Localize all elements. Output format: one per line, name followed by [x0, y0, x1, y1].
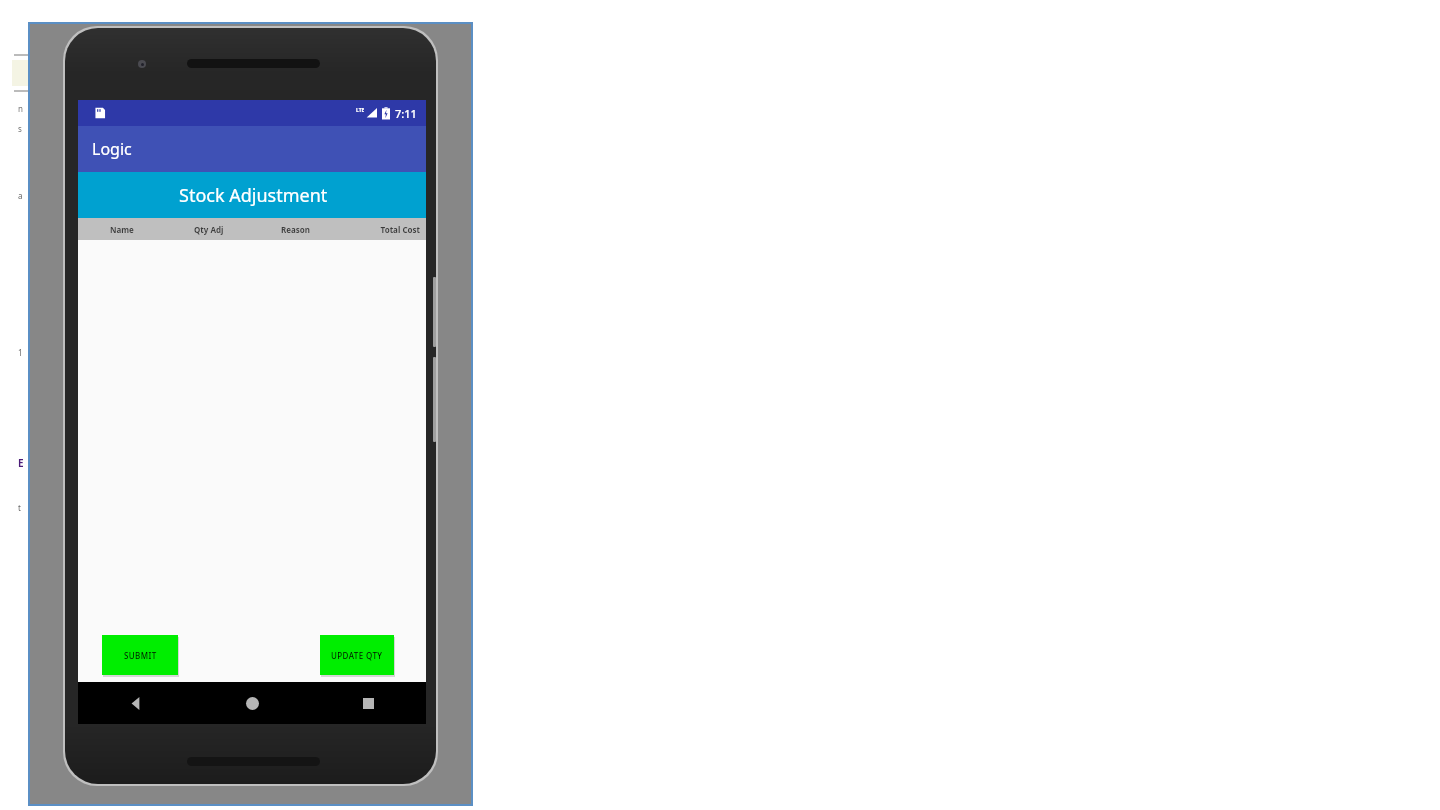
staticText: SUBMIT: [124, 650, 157, 661]
staticText: Qty Adj: [194, 224, 224, 235]
button[interactable]: UPDATE QTY: [320, 635, 394, 675]
staticText: Reason: [281, 224, 311, 235]
staticText: t: [18, 502, 21, 513]
staticText: 1: [18, 347, 23, 358]
staticText: Total Cost: [380, 224, 420, 235]
button[interactable]: Back: [78, 682, 194, 724]
staticText: LTE: [356, 107, 365, 114]
staticText: UPDATE QTY: [331, 650, 383, 661]
staticText: E: [18, 456, 24, 470]
button[interactable]: Stock Adjustment: [78, 172, 426, 218]
button[interactable]: Home: [194, 682, 310, 724]
staticText: 7:11: [395, 106, 417, 121]
staticText: Logic: [92, 138, 132, 160]
staticText: Name: [110, 224, 134, 235]
button[interactable]: SUBMIT: [102, 635, 178, 675]
staticText: Stock Adjustment: [179, 183, 328, 208]
staticText: n: [18, 103, 23, 114]
button[interactable]: Recent apps: [310, 682, 426, 724]
staticText: s: [18, 123, 22, 134]
staticText: a: [18, 190, 23, 201]
